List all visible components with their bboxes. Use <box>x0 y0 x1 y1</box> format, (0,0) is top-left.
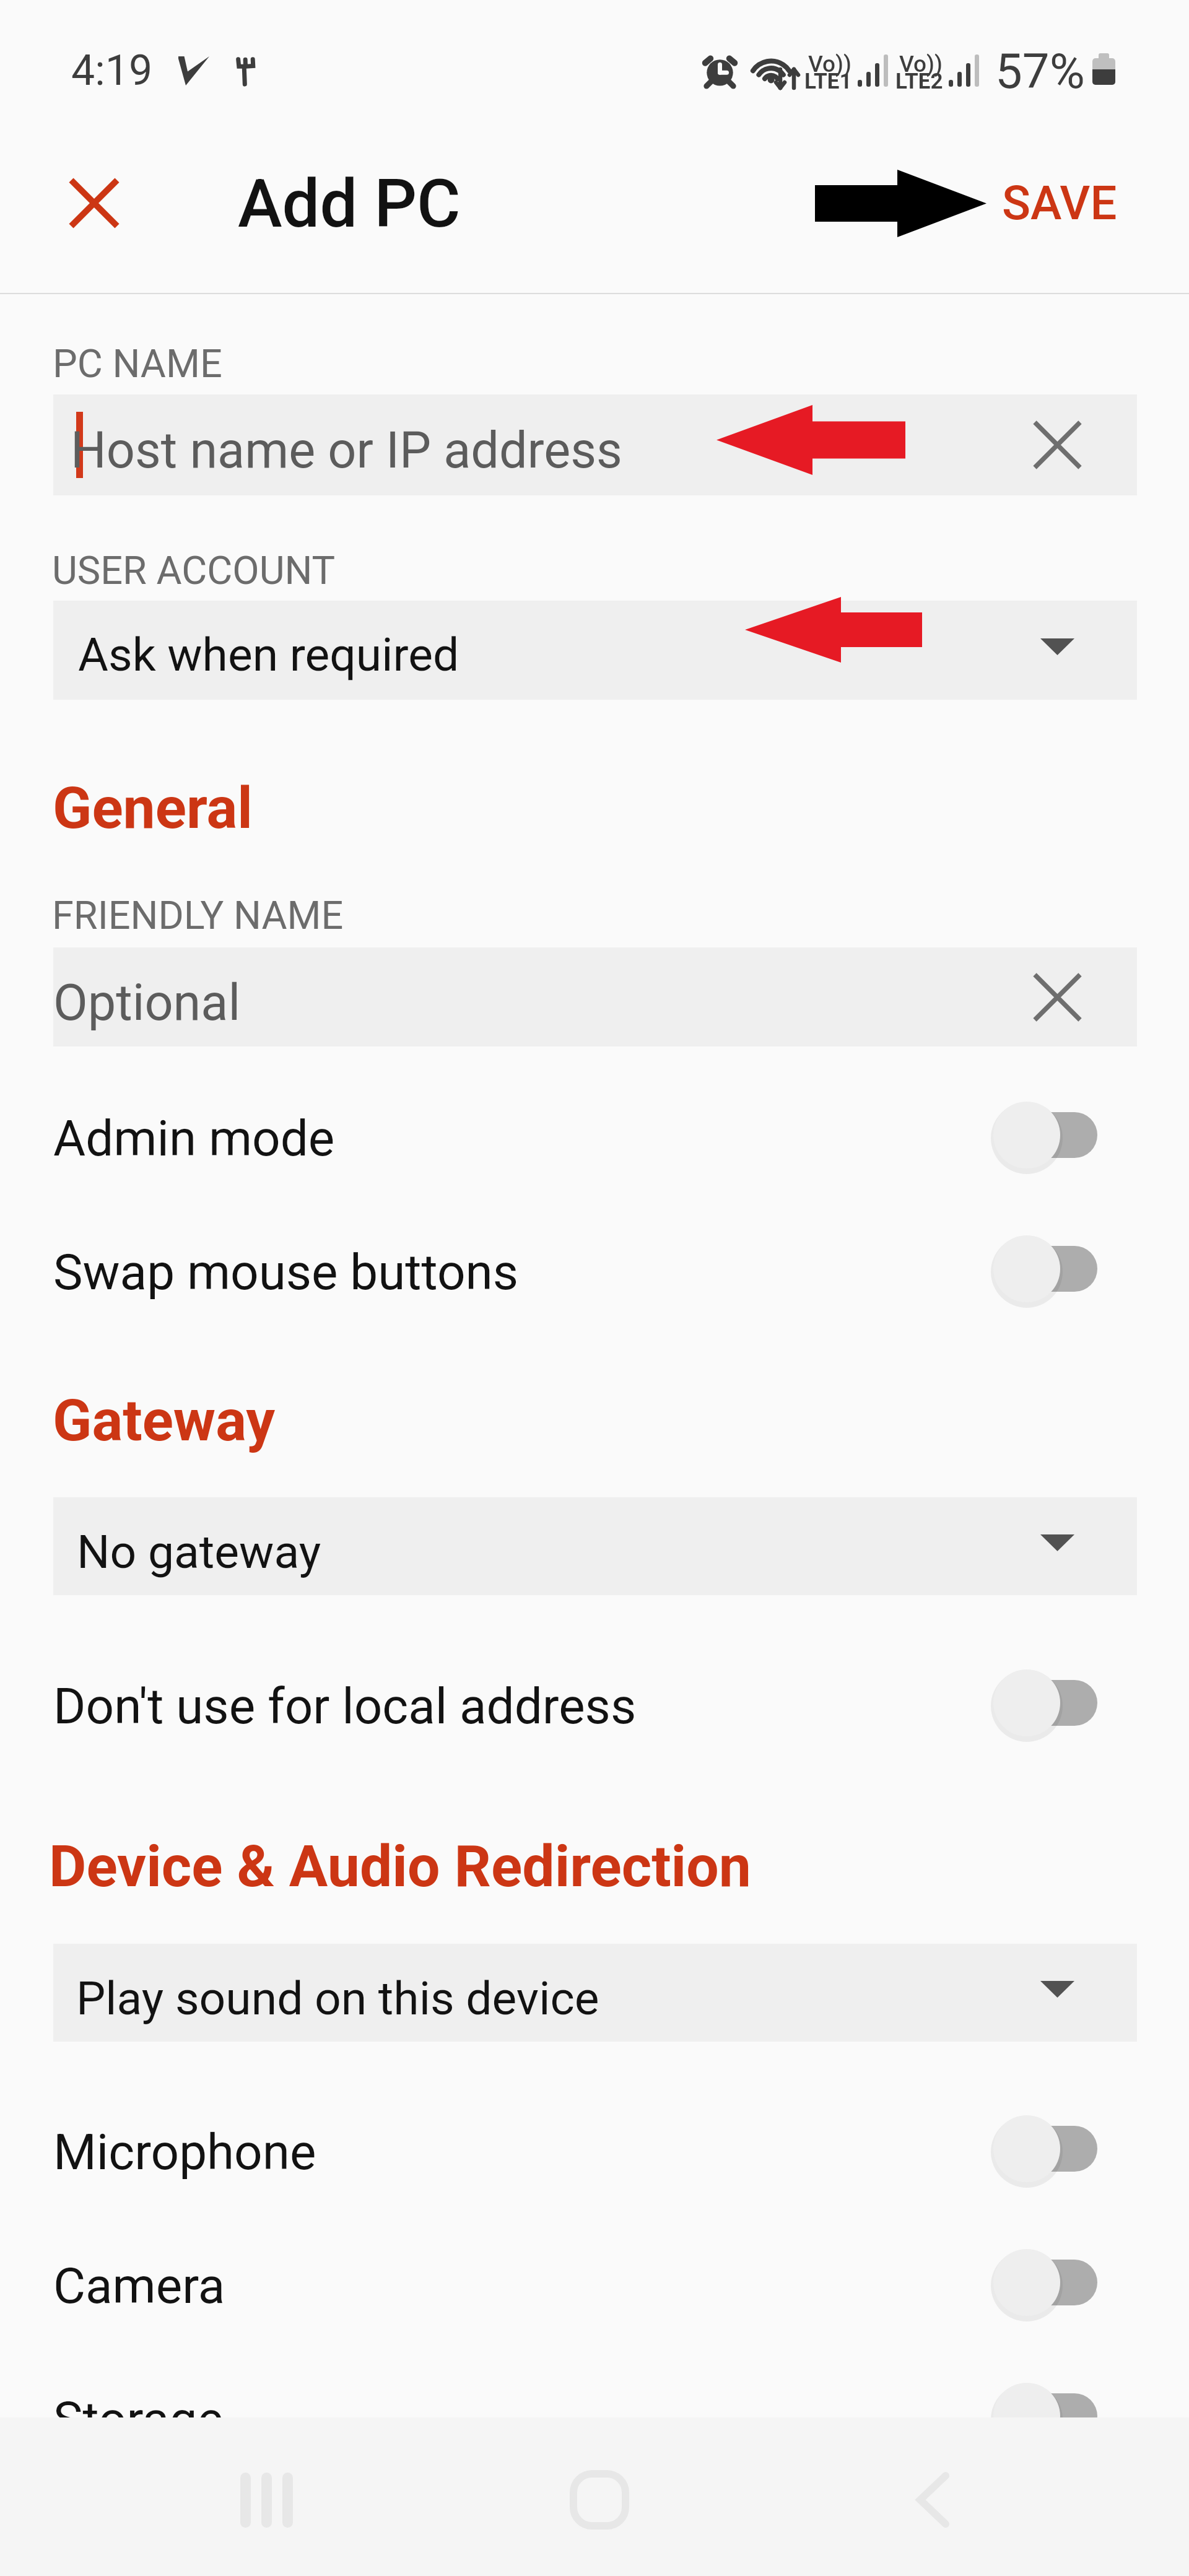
staticText: General <box>53 775 253 842</box>
staticText: FRIENDLY NAME <box>52 893 344 939</box>
button[interactable]: Camera <box>0 2217 1189 2351</box>
button[interactable]: Ask when required <box>53 601 1137 700</box>
staticText: PC NAME <box>53 341 222 387</box>
staticText: USER ACCOUNT <box>52 548 336 594</box>
button[interactable]: Don't use for local address <box>0 1638 1189 1772</box>
staticText: SAVE <box>1002 175 1117 230</box>
button[interactable]: Swap mouse buttons <box>0 1204 1189 1338</box>
staticText: Vo)) <box>808 51 851 77</box>
staticText: LTE2 <box>895 69 943 94</box>
staticText: Camera <box>53 2257 225 2315</box>
staticText: Add PC <box>238 165 461 243</box>
staticText: Play sound on this device <box>76 1971 599 2026</box>
button[interactable]: Home <box>544 2444 655 2556</box>
staticText: Device & Audio Redirection <box>49 1833 751 1900</box>
button[interactable]: Optional <box>53 947 1137 1046</box>
button[interactable]: No gateway <box>53 1497 1137 1595</box>
button[interactable]: Play sound on this device <box>53 1944 1137 2042</box>
button[interactable]: Admin mode <box>0 1070 1189 1204</box>
staticText: Ask when required <box>78 627 459 682</box>
staticText: Admin mode <box>53 1110 335 1168</box>
staticText: 57% <box>995 43 1085 100</box>
staticText: Don't use for local address <box>53 1677 637 1736</box>
staticText: Vo)) <box>899 51 943 77</box>
staticText: Optional <box>53 973 241 1032</box>
staticText: Storage <box>53 2391 224 2449</box>
button[interactable]: Storage <box>0 2351 1189 2485</box>
staticText: Gateway <box>53 1387 276 1455</box>
button[interactable]: Recent apps <box>211 2444 322 2556</box>
staticText: Host name or IP address <box>71 421 622 480</box>
button[interactable]: Close <box>57 166 131 240</box>
button[interactable]: Clear text <box>1017 947 1097 1046</box>
button[interactable]: Host name or IP address <box>53 394 1137 495</box>
staticText: Swap mouse buttons <box>53 1243 519 1302</box>
button[interactable]: Clear text <box>1017 394 1097 495</box>
staticText: 4:19 <box>71 46 153 95</box>
staticText: Microphone <box>53 2123 316 2182</box>
button[interactable]: SAVE <box>965 160 1154 246</box>
staticText: LTE1 <box>804 69 852 94</box>
staticText: No gateway <box>77 1525 321 1579</box>
button[interactable]: Microphone <box>0 2084 1189 2217</box>
